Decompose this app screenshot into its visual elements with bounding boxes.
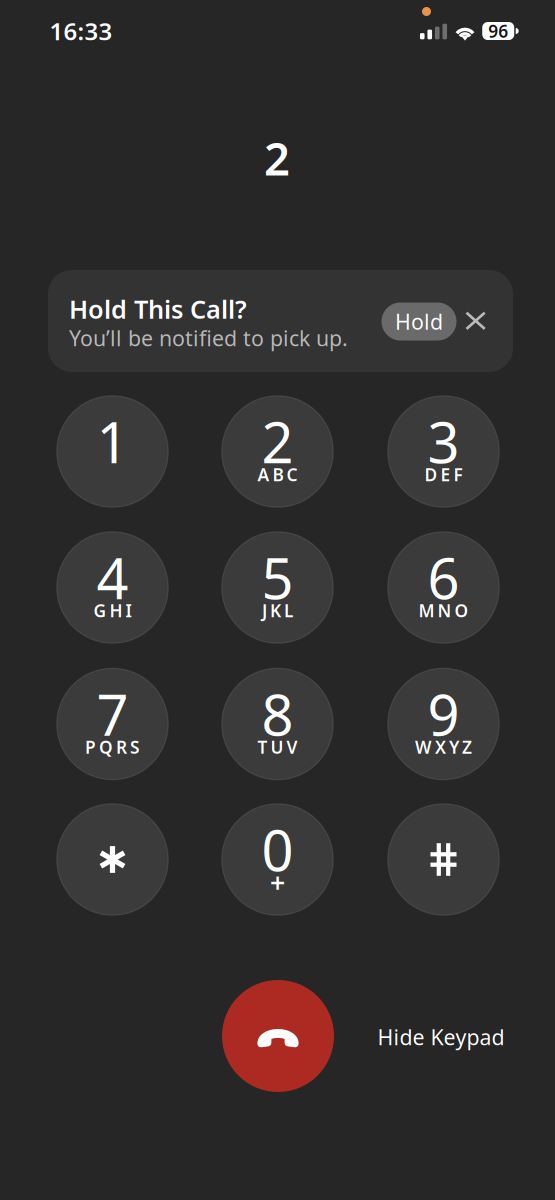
staticText: M N O (418, 599, 468, 622)
staticText: Hide Keypad (377, 1023, 504, 1051)
staticText: 5 (261, 540, 293, 615)
staticText: D E F (424, 463, 462, 486)
button[interactable]: Dismiss (454, 299, 498, 343)
staticText: P Q R S (85, 735, 140, 758)
staticText: 3 (427, 404, 459, 479)
button[interactable]: 4 (37, 532, 187, 643)
button[interactable]: 8 (202, 668, 352, 780)
staticText: 0 (261, 812, 293, 887)
staticText: Hold This Call? (69, 292, 247, 326)
staticText: 9 (427, 677, 459, 751)
staticText: A B C (257, 463, 297, 486)
staticText: T U V (257, 735, 297, 758)
button[interactable]: Star (37, 804, 187, 915)
staticText: 2 (261, 404, 293, 479)
staticText: 2 (264, 128, 290, 188)
button[interactable]: 3 (368, 396, 518, 507)
staticText: W X Y Z (415, 735, 472, 758)
staticText: 7 (96, 677, 128, 751)
staticText: 1 (96, 404, 128, 479)
button[interactable]: 6 (368, 532, 518, 643)
button[interactable]: Pound (368, 804, 518, 915)
button[interactable]: End call (222, 980, 334, 1092)
staticText: 16:33 (49, 15, 112, 47)
staticText: 6 (427, 540, 459, 615)
button[interactable]: 0 (202, 804, 352, 915)
staticText: You’ll be notified to pick up. (69, 324, 348, 352)
staticText: 8 (261, 677, 293, 751)
staticText: G H I (93, 599, 131, 622)
button[interactable]: 9 (368, 668, 518, 780)
button[interactable]: Hold (381, 302, 456, 340)
staticText: 96 (488, 19, 508, 42)
staticText: Hold (395, 307, 443, 336)
button[interactable]: 2 (202, 396, 352, 507)
staticText: 4 (96, 540, 128, 615)
button[interactable]: 1 (37, 396, 187, 507)
staticText: J K L (262, 599, 293, 622)
button[interactable]: Hide Keypad (377, 1023, 504, 1051)
button[interactable]: 5 (202, 532, 352, 643)
staticText: + (270, 865, 285, 900)
button[interactable]: 7 (37, 668, 187, 780)
